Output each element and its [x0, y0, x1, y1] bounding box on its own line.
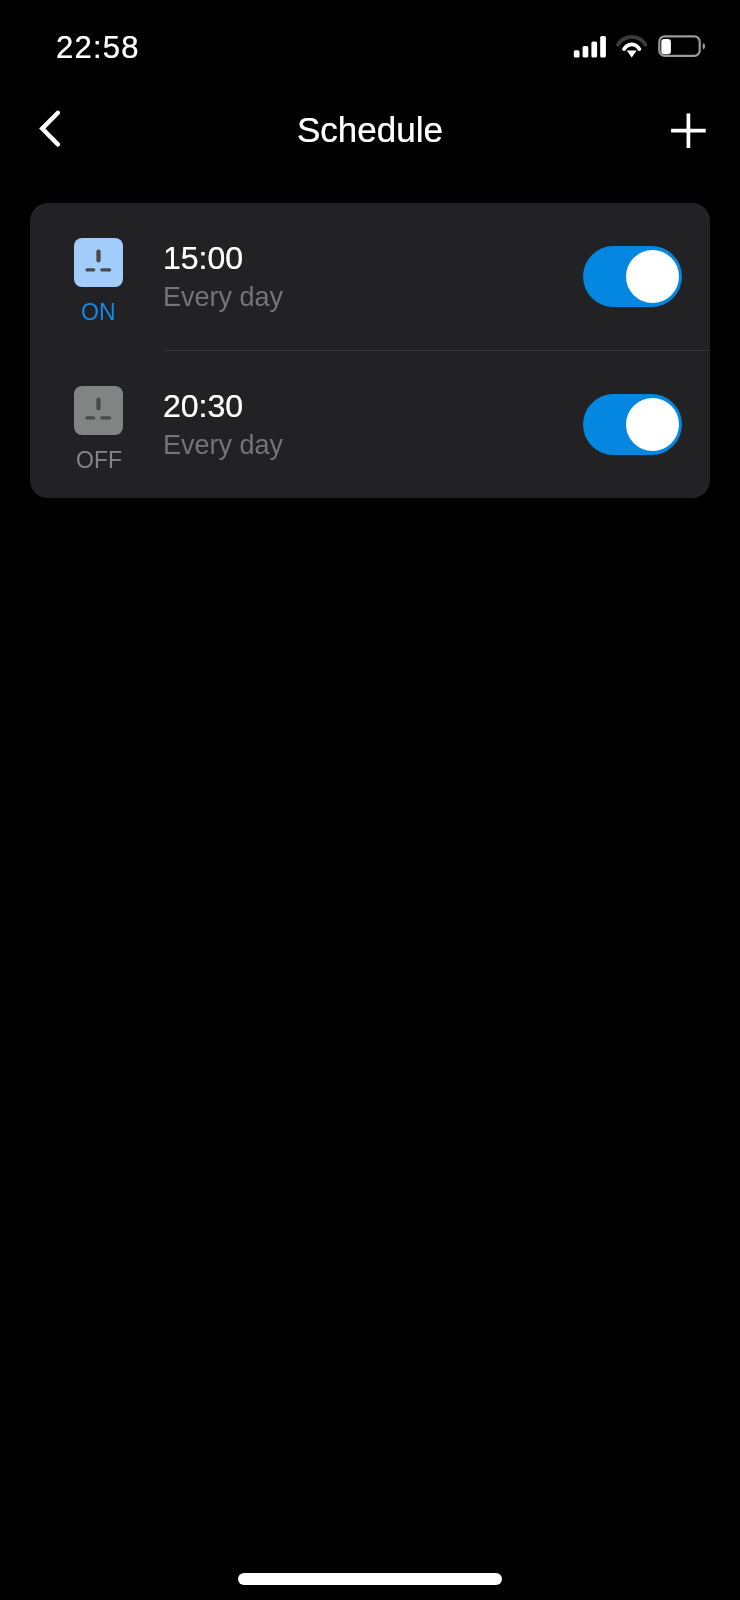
staticText: 15:00	[163, 240, 244, 276]
button[interactable]: Back	[14, 98, 86, 170]
staticText: Every day	[163, 282, 284, 312]
staticText: 22:58	[56, 30, 140, 65]
staticText: ON	[81, 299, 116, 325]
staticText: Every day	[163, 430, 284, 460]
staticText: OFF	[76, 447, 122, 473]
button[interactable]: ON	[30, 203, 710, 350]
staticText: Schedule	[297, 110, 443, 149]
button[interactable]: OFF	[30, 351, 710, 498]
button[interactable]: Enable 20:30 schedule	[583, 394, 682, 455]
button[interactable]: Add schedule	[652, 98, 724, 170]
staticText: 20:30	[163, 388, 244, 424]
button[interactable]: Enable 15:00 schedule	[583, 246, 682, 307]
